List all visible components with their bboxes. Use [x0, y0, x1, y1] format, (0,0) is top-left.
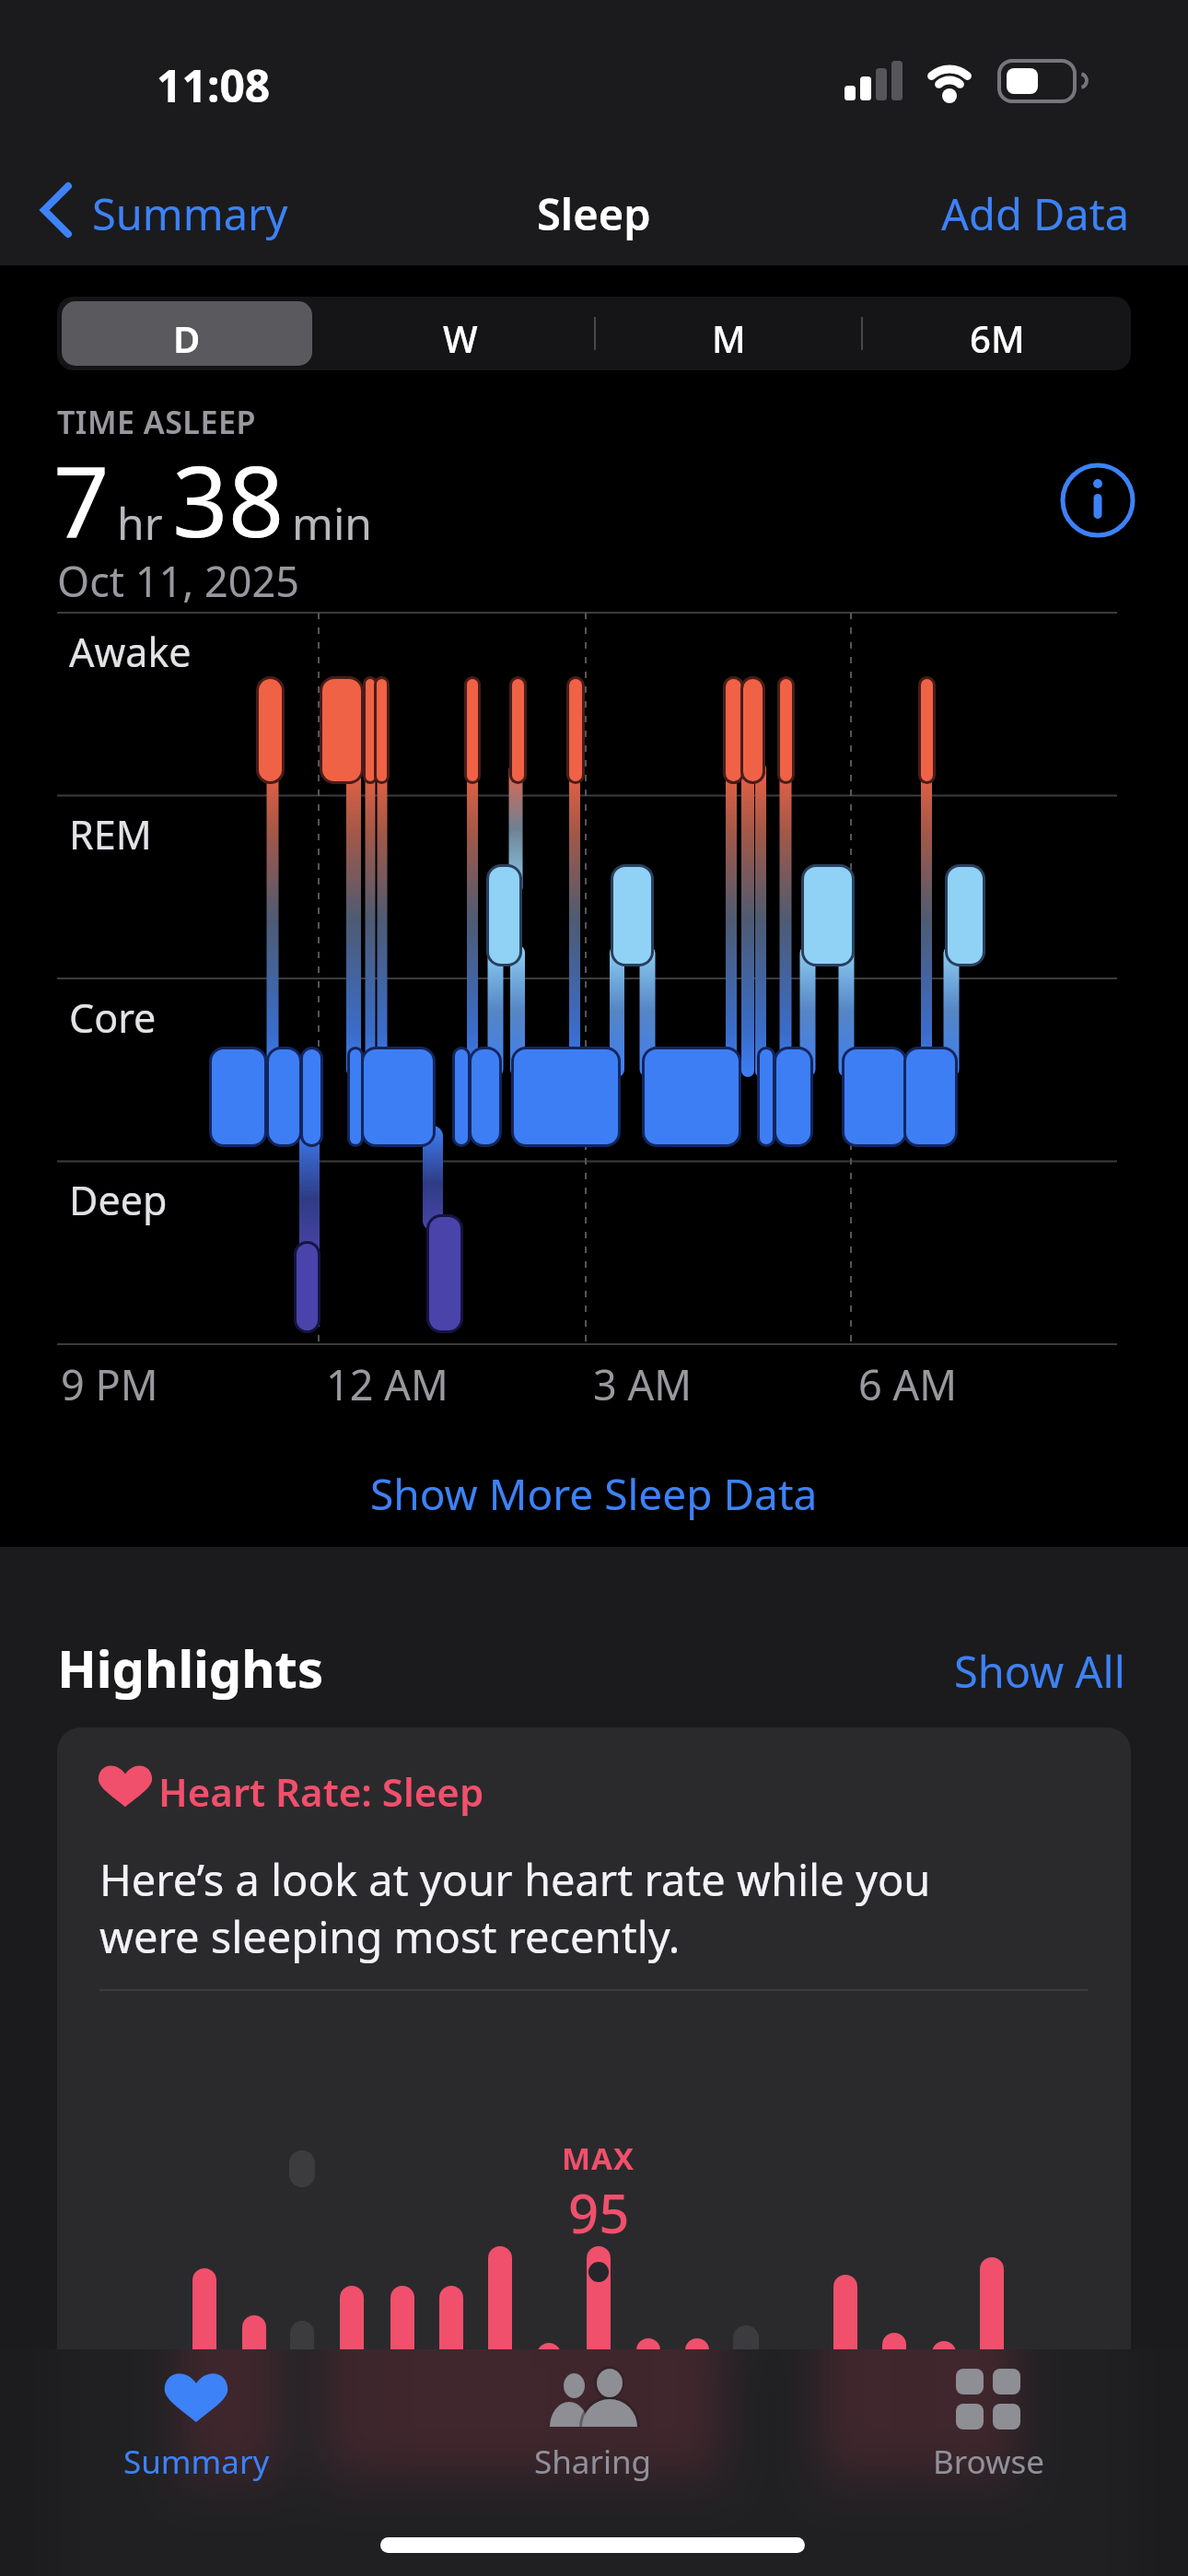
staticText: TIME ASLEEP: [57, 401, 256, 443]
staticText: 95: [568, 2176, 630, 2249]
staticText: min: [292, 493, 372, 553]
staticText: Oct 11, 2025: [57, 553, 299, 609]
staticText: Browse: [933, 2440, 1044, 2484]
staticText: 11:08: [157, 55, 271, 115]
staticText: hr: [117, 493, 163, 553]
staticText: D: [173, 313, 201, 363]
staticText: Show More Sleep Data: [370, 1465, 818, 1523]
staticText: were sleeping most recently.: [99, 1907, 681, 1966]
staticText: Core: [69, 990, 157, 1045]
staticText: 6M: [970, 313, 1025, 363]
staticText: Add Data: [941, 184, 1130, 243]
staticText: Summary: [92, 184, 288, 243]
staticText: 3 AM: [593, 1356, 693, 1412]
staticText: 6 AM: [858, 1356, 958, 1412]
staticText: Sharing: [534, 2440, 652, 2484]
staticText: W: [443, 313, 478, 363]
staticText: Sleep: [537, 184, 651, 243]
staticText: Summary: [123, 2440, 270, 2484]
staticText: MAX: [562, 2137, 635, 2179]
staticText: Here’s a look at your heart rate while y…: [99, 1850, 931, 1909]
staticText: 9 PM: [61, 1356, 158, 1412]
staticText: M: [712, 313, 746, 363]
staticText: Deep: [69, 1173, 168, 1227]
staticText: Highlights: [57, 1633, 324, 1703]
staticText: 38: [172, 433, 285, 566]
staticText: Show All: [954, 1642, 1125, 1701]
staticText: 7: [53, 433, 110, 566]
staticText: Heart Rate: Sleep: [158, 1765, 484, 1818]
staticText: REM: [69, 807, 152, 861]
staticText: Awake: [69, 625, 192, 679]
staticText: 12 AM: [326, 1356, 448, 1412]
